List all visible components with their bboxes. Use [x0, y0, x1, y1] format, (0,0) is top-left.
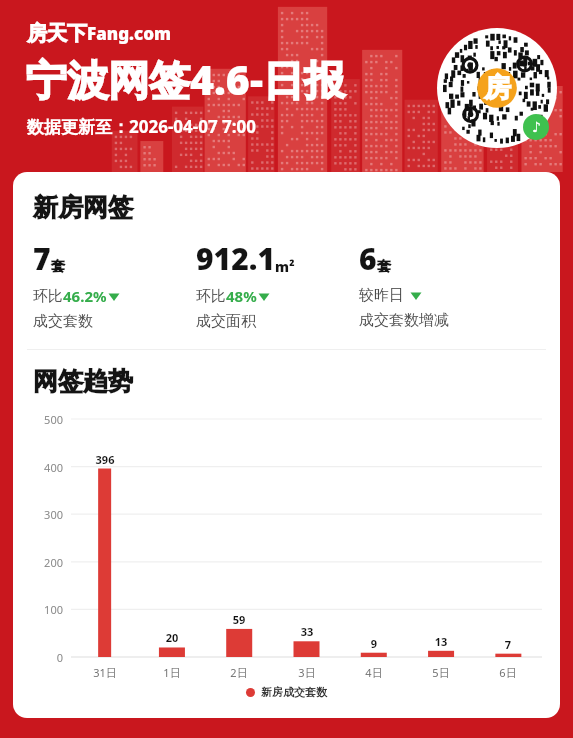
staticText: 套: [51, 258, 65, 276]
staticText: 59: [209, 612, 269, 627]
staticText: m²: [275, 257, 295, 276]
button[interactable]: 6: [359, 238, 560, 330]
staticText: 300: [17, 507, 63, 522]
staticText: 3日: [277, 665, 337, 680]
staticText: 100: [17, 602, 63, 617]
staticText: 6: [359, 238, 377, 279]
staticText: 500: [17, 412, 63, 427]
staticText: 环比: [33, 287, 63, 306]
staticText: 7: [33, 238, 51, 279]
staticText: 新房成交套数: [261, 685, 327, 699]
staticText: 9: [344, 636, 404, 651]
staticText: 成交面积: [196, 312, 256, 331]
staticText: 31日: [75, 665, 135, 680]
staticText: 网签趋势: [33, 366, 133, 397]
staticText: 7: [478, 637, 538, 652]
staticText: 20: [142, 630, 202, 645]
staticText: 成交套数: [33, 312, 93, 331]
staticText: 较昨日: [359, 286, 404, 305]
staticText: 0: [17, 650, 63, 665]
staticText: 396: [75, 452, 135, 467]
button[interactable]: 7: [33, 238, 196, 331]
staticText: ♪: [532, 119, 541, 135]
staticText: 4日: [344, 665, 404, 680]
staticText: 宁波网签4.6-日报: [26, 51, 345, 107]
staticText: 2日: [209, 665, 269, 680]
staticText: 1日: [142, 665, 202, 680]
staticText: 200: [17, 555, 63, 570]
button[interactable]: 扫码二维码: [437, 28, 557, 148]
staticText: 套: [377, 258, 391, 276]
button[interactable]: 房天下: [27, 21, 171, 46]
staticText: 48%: [226, 286, 257, 306]
staticText: 数据更新至：2026-04-07 7:00: [27, 115, 257, 138]
staticText: 912.1: [196, 238, 275, 279]
staticText: 46.2%: [63, 286, 107, 306]
staticText: 6日: [478, 665, 538, 680]
staticText: Fang.com: [87, 22, 171, 45]
staticText: 400: [17, 460, 63, 475]
staticText: 13: [411, 634, 471, 649]
staticText: 房天下: [27, 21, 87, 46]
staticText: 房: [484, 71, 511, 105]
staticText: 5日: [411, 665, 471, 680]
staticText: 环比: [196, 287, 226, 306]
button[interactable]: 912.1: [196, 238, 359, 331]
button[interactable]: 新房成交套数: [13, 685, 560, 699]
staticText: 新房网签: [33, 192, 133, 223]
staticText: 33: [277, 624, 337, 639]
staticText: 成交套数增减: [359, 311, 449, 330]
